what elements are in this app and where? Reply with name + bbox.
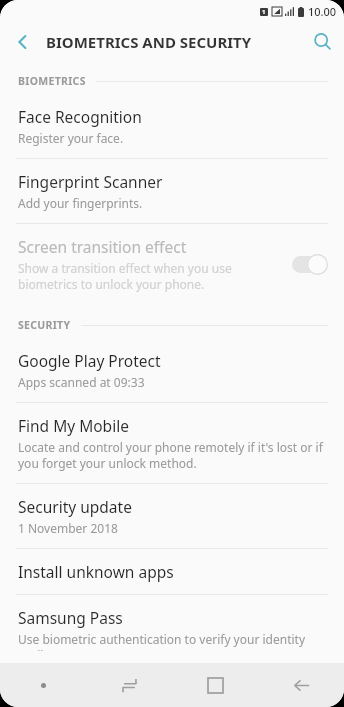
staticText: Use biometric authentication to verify y… xyxy=(18,631,328,651)
button[interactable]: Back xyxy=(0,22,44,61)
button[interactable]: Fingerprint Scanner xyxy=(0,159,344,223)
button[interactable]: Find My Mobile xyxy=(0,403,344,483)
button[interactable]: Assistant xyxy=(25,667,61,703)
button[interactable]: Screen transition effect xyxy=(0,224,344,304)
staticText: 10.00 xyxy=(308,4,337,19)
button[interactable]: Home xyxy=(197,667,233,703)
staticText: Locate and control your phone remotely i… xyxy=(18,439,323,471)
staticText: Find My Mobile xyxy=(18,415,129,436)
staticText: 1 xyxy=(262,8,266,16)
staticText: Apps scanned at 09:33 xyxy=(18,374,145,390)
button[interactable]: Install unknown apps xyxy=(0,549,344,594)
other: Screen transition effect xyxy=(290,253,330,275)
staticText: BIOMETRICS AND SECURITY xyxy=(46,32,252,52)
staticText: Install unknown apps xyxy=(18,561,174,582)
staticText: Samsung Pass xyxy=(18,607,123,628)
staticText: BIOMETRICS xyxy=(18,74,86,88)
staticText: Show a transition effect when you use bi… xyxy=(18,260,232,292)
button[interactable]: Google Play Protect xyxy=(0,338,344,402)
staticText: 1 November 2018 xyxy=(18,520,118,536)
staticText: SECURITY xyxy=(18,318,71,332)
staticText: Screen transition effect xyxy=(18,236,187,257)
button[interactable]: Back xyxy=(283,667,319,703)
staticText: Add your fingerprints. xyxy=(18,195,143,211)
button[interactable]: Face Recognition xyxy=(0,94,344,158)
staticText: Face Recognition xyxy=(18,106,142,127)
button[interactable]: Recents xyxy=(111,667,147,703)
staticText: Register your face. xyxy=(18,130,124,146)
button[interactable]: Samsung Pass xyxy=(0,595,344,663)
staticText: Google Play Protect xyxy=(18,350,161,371)
button[interactable]: Search xyxy=(300,22,344,61)
button[interactable]: Security update xyxy=(0,484,344,548)
staticText: Fingerprint Scanner xyxy=(18,171,163,192)
staticText: Security update xyxy=(18,496,132,517)
